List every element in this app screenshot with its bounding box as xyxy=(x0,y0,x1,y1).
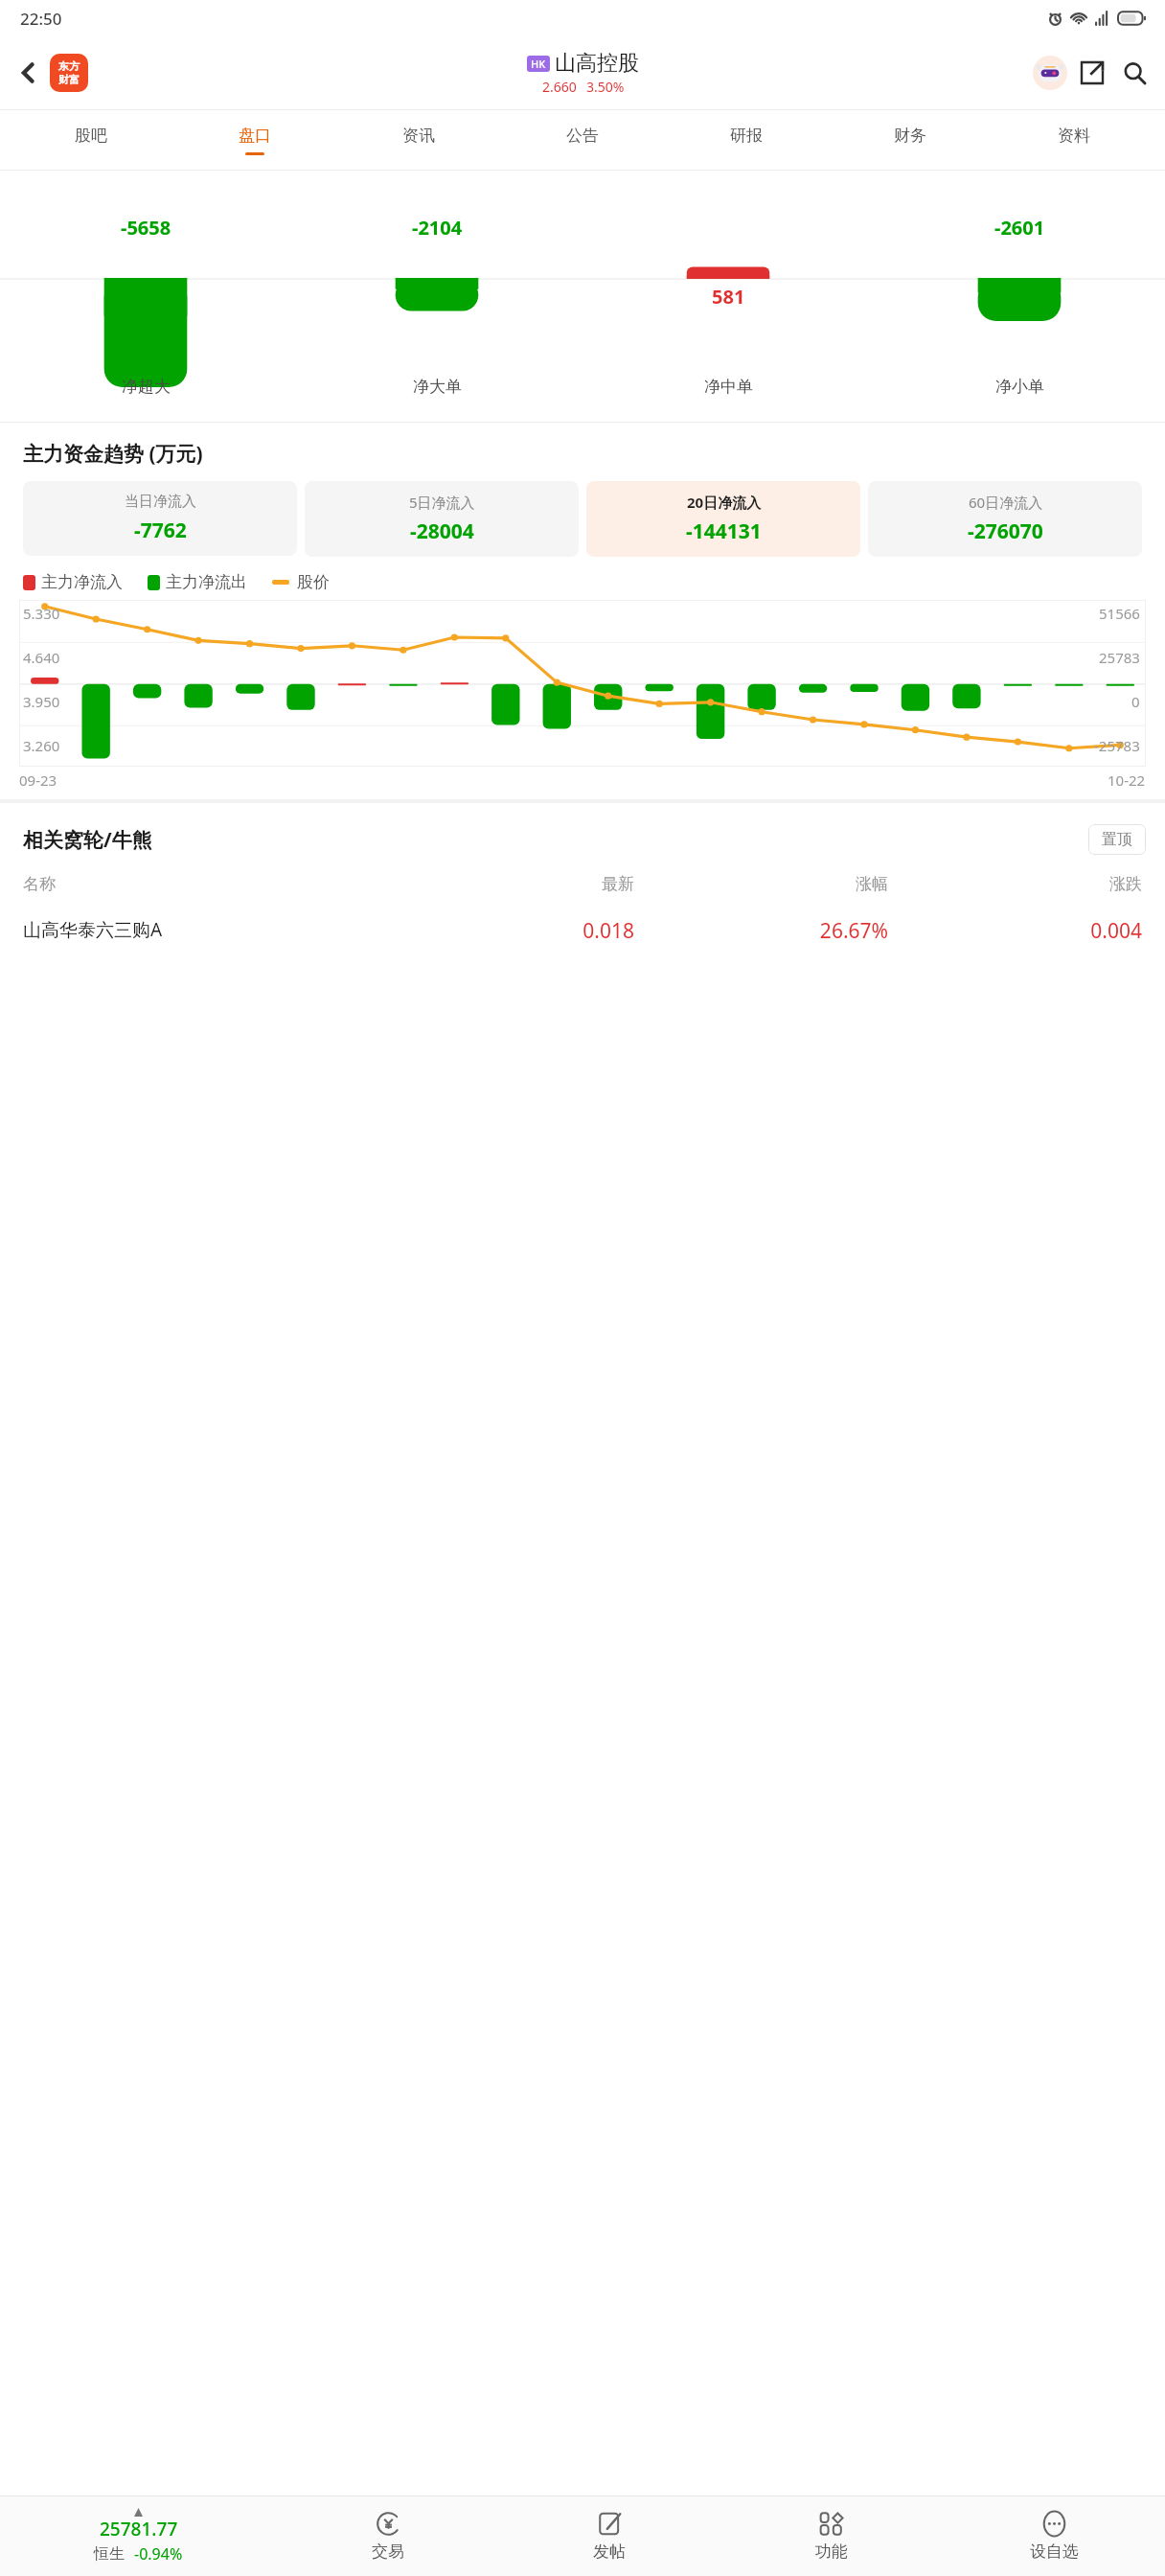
button[interactable]: 功能 xyxy=(720,2496,943,2576)
staticText: 盘口 xyxy=(239,126,271,146)
staticText: -25783 xyxy=(1094,736,1140,755)
staticText: 恒生 xyxy=(94,2544,125,2564)
staticText: 财富 xyxy=(58,73,80,86)
button[interactable]: 5日净流入 xyxy=(305,481,579,557)
staticText: 涨跌 xyxy=(888,874,1142,894)
button[interactable]: 盘口 xyxy=(172,110,336,170)
staticText: 净中单 xyxy=(704,377,753,397)
staticText: -2601 xyxy=(994,215,1045,241)
button[interactable]: 财务 xyxy=(828,110,992,170)
button[interactable]: 资讯 xyxy=(336,110,500,170)
staticText: 主力净流出 xyxy=(166,572,247,592)
button[interactable]: 60日净流入 xyxy=(868,481,1142,557)
staticText: 当日净流入 xyxy=(125,493,196,511)
staticText: 26.67% xyxy=(634,917,888,945)
staticText: 0.004 xyxy=(888,917,1142,945)
button[interactable]: 净超大 xyxy=(0,377,291,397)
staticText: 25783 xyxy=(1099,648,1140,667)
staticText: 东方 xyxy=(58,59,80,73)
staticText: 2.660 xyxy=(542,78,577,96)
staticText: 主力净流入 xyxy=(41,572,123,592)
button[interactable]: 山高华泰六三购A xyxy=(23,917,1142,945)
staticText: 5日净流入 xyxy=(409,493,475,512)
staticText: 最新 xyxy=(380,874,634,894)
staticText: 10-22 xyxy=(1108,770,1146,790)
button[interactable]: 股吧 xyxy=(10,110,172,170)
button[interactable]: 当日净流入 xyxy=(23,481,297,556)
staticText: 51566 xyxy=(1099,604,1140,623)
staticText: 22:50 xyxy=(20,8,62,30)
staticText: 功能 xyxy=(815,2541,848,2562)
button[interactable]: 发帖 xyxy=(498,2496,720,2576)
staticText: 3.260 xyxy=(23,736,60,755)
button[interactable]: Back xyxy=(8,52,50,94)
staticText: 涨幅 xyxy=(634,874,888,894)
staticText: 公告 xyxy=(566,126,599,146)
button[interactable]: Search xyxy=(1113,52,1155,94)
staticText: 股价 xyxy=(297,572,330,592)
staticText: -28004 xyxy=(410,517,474,545)
staticText: 相关窝轮/牛熊 xyxy=(23,826,152,854)
button[interactable]: 净中单 xyxy=(582,377,874,397)
staticText: -0.94% xyxy=(134,2543,183,2564)
staticText: -276070 xyxy=(968,517,1043,545)
staticText: 25781.77 xyxy=(100,2517,178,2541)
staticText: 山高控股 xyxy=(555,50,639,77)
button[interactable]: 置顶 xyxy=(1088,824,1146,855)
staticText: 山高华泰六三购A xyxy=(23,917,380,942)
staticText: 581 xyxy=(712,284,745,310)
button[interactable]: 资料 xyxy=(992,110,1155,170)
staticText: -2104 xyxy=(412,215,463,241)
staticText: 净小单 xyxy=(995,377,1044,397)
staticText: 4.640 xyxy=(23,648,60,667)
button[interactable]: 设自选 xyxy=(943,2496,1165,2576)
staticText: 置顶 xyxy=(1102,830,1132,849)
button[interactable]: Share xyxy=(1071,52,1113,94)
staticText: 3.50% xyxy=(586,78,625,96)
staticText: 资料 xyxy=(1058,126,1090,146)
staticText: 研报 xyxy=(730,126,763,146)
button[interactable]: 东方财富 xyxy=(50,54,88,92)
staticText: 3.950 xyxy=(23,692,60,711)
staticText: -5658 xyxy=(121,215,171,241)
staticText: 名称 xyxy=(23,874,380,894)
button[interactable]: 交易 xyxy=(277,2496,498,2576)
staticText: 设自选 xyxy=(1030,2541,1079,2562)
staticText: 5.330 xyxy=(23,604,60,623)
staticText: 发帖 xyxy=(593,2541,626,2562)
staticText: 20日净流入 xyxy=(687,493,762,512)
staticText: 09-23 xyxy=(19,770,57,790)
staticText: 财务 xyxy=(894,126,926,146)
staticText: -7762 xyxy=(134,517,187,544)
staticText: 交易 xyxy=(372,2541,404,2562)
staticText: HK xyxy=(531,57,546,71)
staticText: 资讯 xyxy=(402,126,435,146)
button[interactable]: 25781.77 xyxy=(0,2496,277,2576)
button[interactable]: 20日净流入 xyxy=(586,481,860,557)
button[interactable]: 净小单 xyxy=(874,377,1165,397)
staticText: 股吧 xyxy=(75,126,107,146)
button[interactable]: 研报 xyxy=(664,110,828,170)
staticText: 净大单 xyxy=(413,377,462,397)
staticText: -144131 xyxy=(686,517,762,545)
staticText: 主力资金趋势 (万元) xyxy=(23,440,203,468)
button[interactable]: 净大单 xyxy=(291,377,582,397)
staticText: 0.018 xyxy=(380,917,634,945)
button[interactable]: AI assistant xyxy=(1029,52,1071,94)
staticText: 0 xyxy=(1131,692,1140,711)
button[interactable]: 公告 xyxy=(500,110,664,170)
staticText: 净超大 xyxy=(122,377,171,397)
staticText: 60日净流入 xyxy=(969,493,1043,512)
